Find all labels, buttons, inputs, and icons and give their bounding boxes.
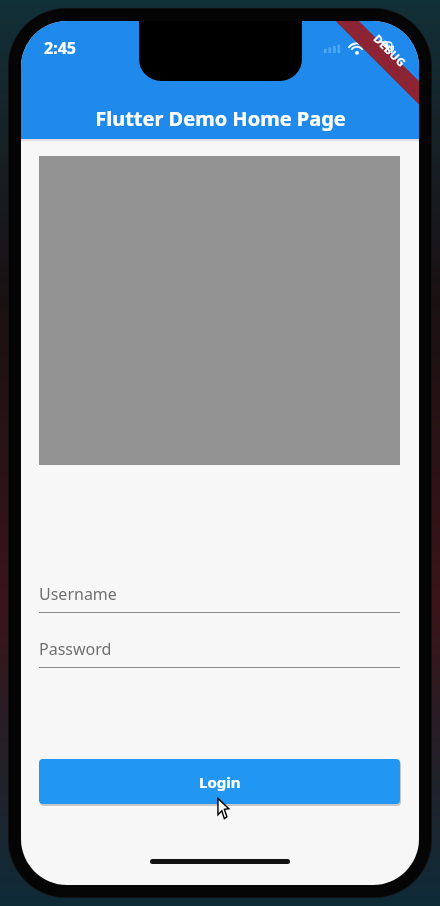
button[interactable]: Username <box>39 583 400 613</box>
button[interactable]: Login <box>39 759 400 804</box>
button[interactable]: Password <box>39 638 400 668</box>
staticText: Flutter Demo Home Page <box>95 105 346 132</box>
staticText: DEBUG <box>371 31 409 70</box>
staticText: Password <box>39 638 112 660</box>
staticText: Username <box>39 583 117 605</box>
staticText: Login <box>199 772 241 792</box>
staticText: 2:45 <box>44 37 76 59</box>
